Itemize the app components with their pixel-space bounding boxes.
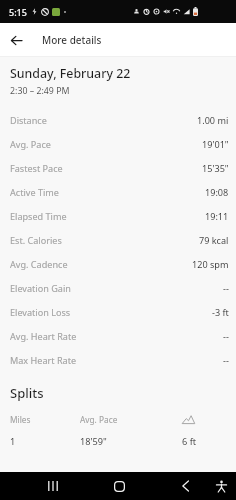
staticText: 19:08 [205,186,229,198]
staticText: -- [223,330,229,342]
button[interactable]: Recent apps [38,472,68,500]
button[interactable]: Back [170,472,200,500]
button[interactable]: Distance [0,108,236,132]
staticText: 1 [10,435,80,448]
staticText: Avg. Heart Rate [10,330,77,342]
staticText: Est. Calories [10,234,62,246]
staticText: 18'59" [80,435,182,448]
staticText: More details [42,33,102,47]
staticText: Elevation Gain [10,282,71,294]
staticText: 19:11 [205,210,229,222]
button[interactable]: Elevation Loss [0,300,236,324]
button[interactable]: Back [0,23,33,56]
staticText: 1.00 mi [197,114,229,126]
button[interactable]: Est. Calories [0,228,236,252]
button[interactable]: Elevation Gain [0,276,236,300]
staticText: -3 ft [212,306,229,318]
staticText: Avg. Cadence [10,258,68,270]
staticText: 6 ft [182,435,197,448]
button[interactable]: Elapsed Time [0,204,236,228]
button[interactable]: Fastest Pace [0,156,236,180]
staticText: 5:15 [9,6,27,18]
button[interactable]: Active Time [0,180,236,204]
staticText: Distance [10,114,47,126]
button[interactable]: Avg. Heart Rate [0,324,236,348]
staticText: 19'01" [202,138,229,150]
button[interactable]: Avg. Pace [0,132,236,156]
staticText: Avg. Pace [80,414,182,425]
button[interactable]: Max Heart Rate [0,348,236,372]
staticText: Active Time [10,186,59,198]
staticText: Miles [10,414,80,425]
staticText: Sunday, February 22 [10,65,131,82]
staticText: -- [223,282,229,294]
staticText: 79 kcal [199,234,229,246]
staticText: Elapsed Time [10,210,67,222]
button[interactable]: Accessibility [207,472,236,500]
staticText: 2:30 – 2:49 PM [10,85,70,97]
staticText: Avg. Pace [10,138,51,150]
button[interactable]: Avg. Cadence [0,252,236,276]
staticText: Splits [10,384,44,402]
staticText: 15'35" [202,162,229,174]
staticText: -- [223,354,229,366]
staticText: Elevation Loss [10,306,71,318]
button[interactable]: 1 [0,434,236,448]
staticText: Fastest Pace [10,162,63,174]
staticText: 120 spm [192,258,229,270]
button[interactable]: Home [104,472,134,500]
staticText: Max Heart Rate [10,354,77,366]
